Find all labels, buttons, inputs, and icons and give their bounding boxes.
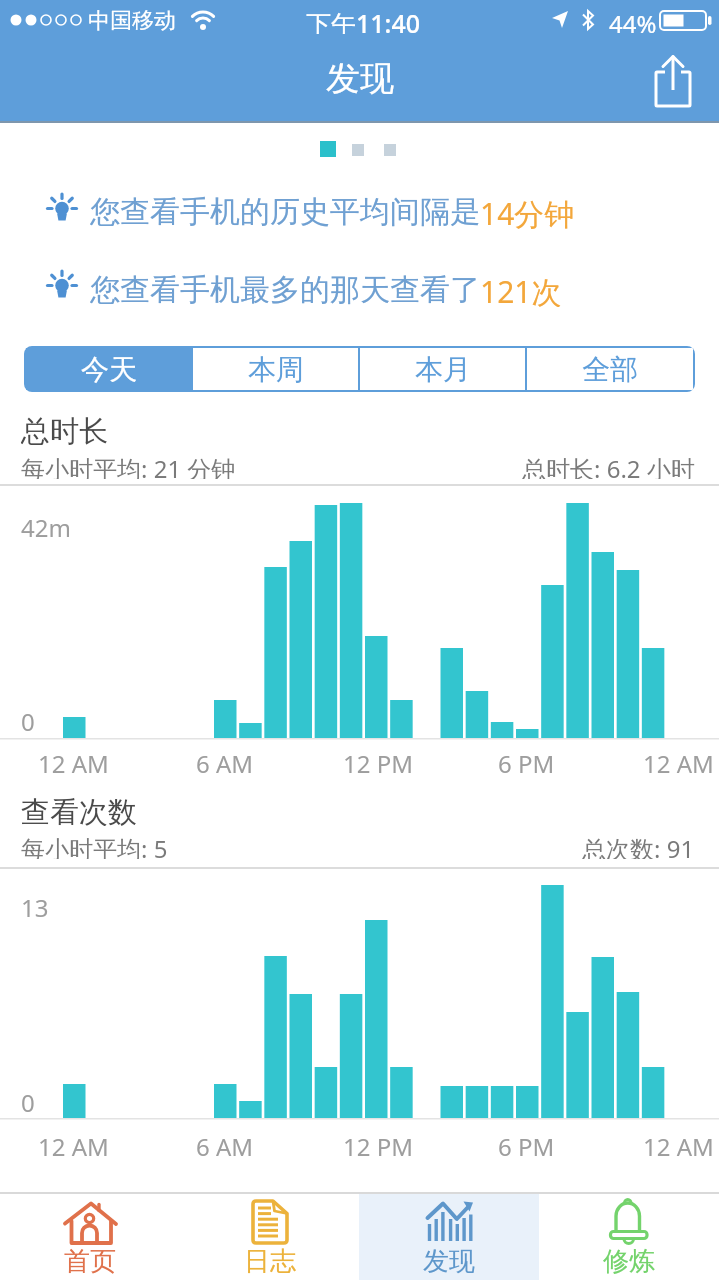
staticText: 发现 xyxy=(326,57,394,97)
staticText: 本月 xyxy=(415,352,471,387)
staticText: 12 AM xyxy=(643,747,714,773)
staticText: 13 xyxy=(21,891,49,917)
button[interactable]: 本周 xyxy=(193,348,358,390)
staticText: 6 PM xyxy=(498,1130,555,1156)
staticText: 12 PM xyxy=(343,1130,413,1156)
staticText: 12 PM xyxy=(343,747,413,773)
staticText: 下午11:40 xyxy=(306,6,421,34)
staticText: 12 AM xyxy=(38,747,109,773)
staticText: 12 AM xyxy=(643,1130,714,1156)
staticText: 42m xyxy=(21,511,71,537)
staticText: 发现 xyxy=(423,1245,475,1275)
staticText: 总时长: 6.2 小时 xyxy=(522,452,695,479)
staticText: 每小时平均: 21 分钟 xyxy=(21,452,236,479)
staticText: 您查看手机的历史平均间隔是 xyxy=(90,193,480,229)
staticText: 查看次数 xyxy=(21,794,137,826)
button[interactable]: 全部 xyxy=(527,348,693,390)
button[interactable] xyxy=(539,1194,719,1280)
button[interactable] xyxy=(646,50,700,112)
staticText: 首页 xyxy=(64,1245,116,1275)
staticText: 总时长 xyxy=(21,413,108,445)
staticText: 0 xyxy=(21,705,35,731)
button[interactable]: 您查看手机最多的那天查看了 xyxy=(90,271,562,307)
staticText: 0 xyxy=(21,1086,35,1112)
button[interactable]: 本月 xyxy=(360,348,525,390)
button[interactable]: 您查看手机的历史平均间隔是 xyxy=(90,193,575,229)
staticText: 今天 xyxy=(81,352,137,387)
staticText: 日志 xyxy=(244,1245,296,1275)
staticText: 44% xyxy=(609,7,657,33)
staticText: 121次 xyxy=(480,271,562,307)
button[interactable] xyxy=(180,1194,360,1280)
staticText: 修炼 xyxy=(603,1245,655,1275)
button[interactable] xyxy=(359,1194,539,1280)
staticText: 14分钟 xyxy=(480,193,575,229)
button[interactable]: 今天 xyxy=(26,348,191,390)
button[interactable] xyxy=(0,1194,180,1280)
staticText: 全部 xyxy=(582,352,638,387)
staticText: 每小时平均: 5 xyxy=(21,832,168,859)
staticText: 6 PM xyxy=(498,747,555,773)
staticText: 中国移动 xyxy=(88,7,176,33)
staticText: 本周 xyxy=(248,352,304,387)
staticText: 6 AM xyxy=(196,1130,254,1156)
staticText: 您查看手机最多的那天查看了 xyxy=(90,271,480,307)
staticText: 总次数: 91 xyxy=(582,832,695,859)
staticText: 12 AM xyxy=(38,1130,109,1156)
staticText: 6 AM xyxy=(196,747,254,773)
